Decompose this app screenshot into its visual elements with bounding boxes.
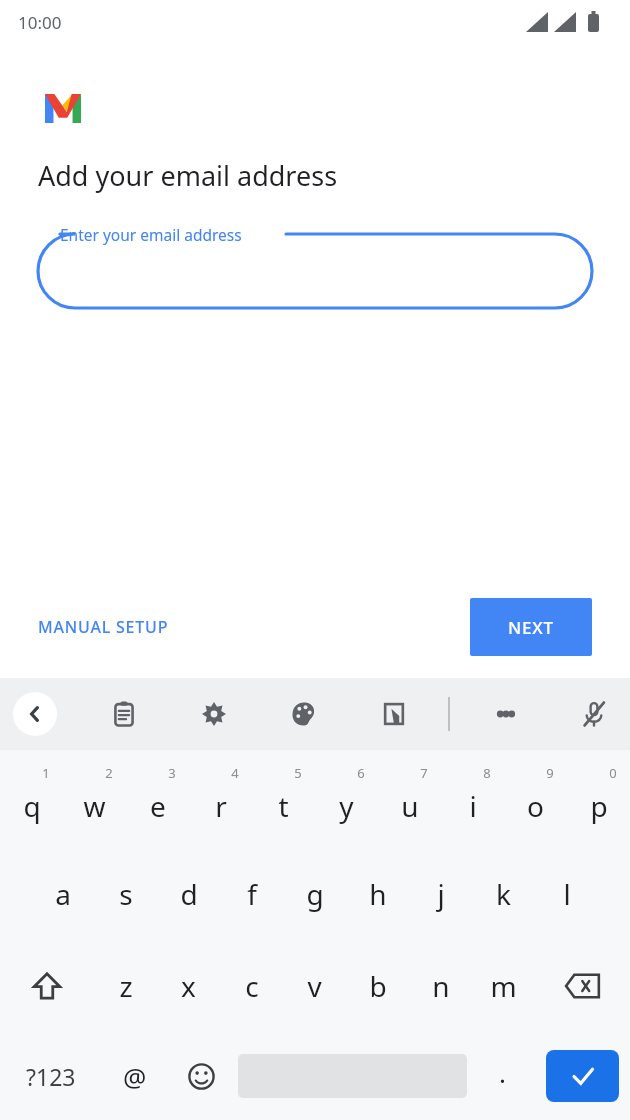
button[interactable]: l [535,848,598,940]
staticText: 5 [294,764,302,782]
staticText: MANUAL SETUP [38,616,169,638]
button[interactable]: n [409,940,472,1032]
staticText: l [563,875,571,913]
staticText: 1 [42,764,50,782]
button[interactable]: s [94,848,157,940]
staticText: d [180,875,198,913]
staticText: f [247,875,257,913]
button[interactable]: More options [482,690,530,738]
button[interactable]: MANUAL SETUP [24,606,183,648]
button[interactable]: Clipboard [100,690,148,738]
button[interactable]: Voice input off [570,690,618,738]
button[interactable]: 0 [567,756,630,848]
button[interactable]: Back [13,692,57,736]
staticText: t [278,787,289,825]
staticText: 10:00 [18,11,62,34]
button[interactable]: 4 [189,756,252,848]
staticText: i [469,787,477,825]
staticText: y [339,787,354,825]
button[interactable]: @ [102,1032,168,1120]
button[interactable]: 7 [378,756,441,848]
staticText: 8 [483,764,491,782]
staticText: n [432,967,450,1005]
button[interactable]: 2 [63,756,126,848]
staticText: 4 [231,764,239,782]
button[interactable]: d [157,848,220,940]
button[interactable]: . [471,1032,534,1120]
staticText: c [245,967,259,1005]
staticText: u [401,787,419,825]
staticText: z [119,967,133,1005]
button[interactable]: NEXT [470,598,592,656]
staticText: Add your email address [38,157,338,194]
button[interactable]: m [472,940,535,1032]
staticText: NEXT [508,616,554,639]
button[interactable]: 6 [315,756,378,848]
staticText: 3 [168,764,176,782]
button[interactable]: 5 [252,756,315,848]
staticText: o [527,787,544,825]
staticText: q [23,787,41,825]
staticText: m [490,967,517,1005]
button[interactable]: k [472,848,535,940]
staticText: p [590,787,608,825]
button[interactable]: 9 [504,756,567,848]
button[interactable]: x [157,940,220,1032]
button[interactable]: Emoji [168,1032,234,1120]
staticText: @ [123,1059,147,1094]
staticText: 2 [105,764,113,782]
button[interactable]: Shift [0,940,94,1032]
button[interactable]: c [220,940,283,1032]
staticText: ?123 [26,1061,76,1092]
button[interactable]: f [220,848,283,940]
staticText: Enter your email address [60,224,242,245]
button[interactable]: a [31,848,94,940]
button[interactable]: 3 [126,756,189,848]
button[interactable]: Backspace [535,940,630,1032]
staticText: a [55,875,71,913]
staticText: x [181,967,196,1005]
button[interactable]: v [283,940,346,1032]
button[interactable]: j [409,848,472,940]
staticText: 0 [609,764,617,782]
button[interactable]: z [94,940,157,1032]
staticText: h [369,875,387,913]
button[interactable]: Handwriting [370,690,418,738]
button[interactable]: Enter [546,1050,619,1102]
button[interactable]: Enter your email address [38,226,592,316]
button[interactable]: Settings [190,690,238,738]
button[interactable]: Theme [280,690,328,738]
staticText: r [215,787,227,825]
button[interactable]: h [346,848,409,940]
staticText: s [119,875,133,913]
staticText: . [499,1055,506,1090]
staticText: k [496,875,511,913]
staticText: 9 [546,764,554,782]
button[interactable]: g [283,848,346,940]
staticText: e [150,787,166,825]
button[interactable]: 1 [0,756,63,848]
staticText: v [307,967,322,1005]
staticText: b [369,967,387,1005]
staticText: 6 [357,764,365,782]
staticText: 7 [420,764,428,782]
button[interactable]: b [346,940,409,1032]
staticText: w [83,787,106,825]
button[interactable]: ?123 [0,1032,102,1120]
staticText: g [306,875,324,913]
button[interactable]: 8 [441,756,504,848]
staticText: j [437,875,445,913]
